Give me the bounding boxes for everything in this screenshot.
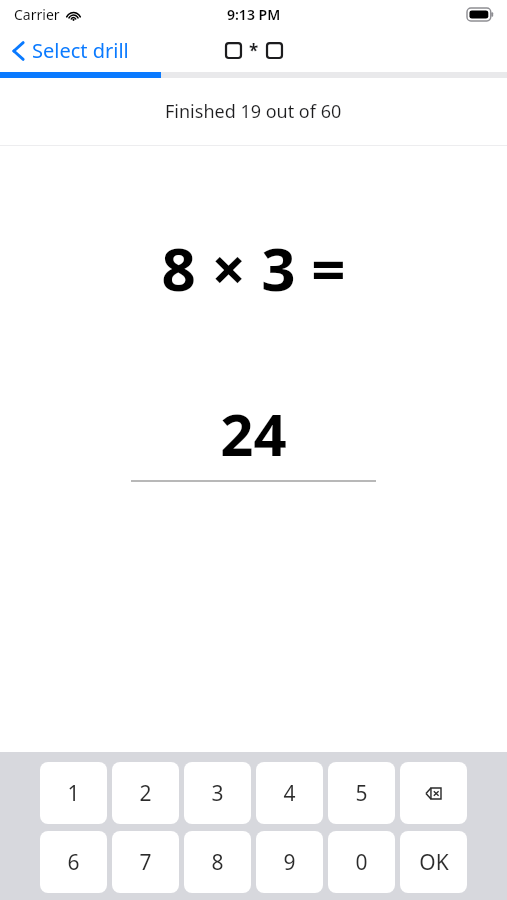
staticText: 9 [283,848,296,877]
staticText: Select drill [32,37,129,64]
button[interactable]: Select drill [0,31,139,70]
button[interactable]: 9 [256,831,323,893]
staticText: 6 [67,848,80,877]
staticText: Carrier [14,5,60,24]
staticText: 8 × 3 = [161,227,346,309]
button[interactable]: Backspace [400,762,467,824]
button[interactable]: 5 [328,762,395,824]
button[interactable]: 4 [256,762,323,824]
button[interactable]: 2 [112,762,179,824]
staticText: 5 [355,779,368,808]
staticText: 4 [283,779,296,808]
staticText: 7 [139,848,152,877]
staticText: 0 [355,848,368,877]
staticText: 2 [139,779,152,808]
staticText: OK [419,848,449,877]
button[interactable]: 1 [40,762,107,824]
button[interactable]: 8 [184,831,251,893]
staticText: 9:13 PM [227,5,281,24]
button[interactable]: 6 [40,831,107,893]
staticText: 1 [67,779,80,808]
staticText: 3 [211,779,224,808]
staticText: Finished 19 out of 60 [165,99,342,124]
staticText: * [249,39,259,62]
button[interactable]: 7 [112,831,179,893]
staticText: 8 [211,848,224,877]
button[interactable]: OK [400,831,467,893]
button[interactable]: 0 [328,831,395,893]
staticText: 24 [220,394,287,473]
button[interactable]: 3 [184,762,251,824]
